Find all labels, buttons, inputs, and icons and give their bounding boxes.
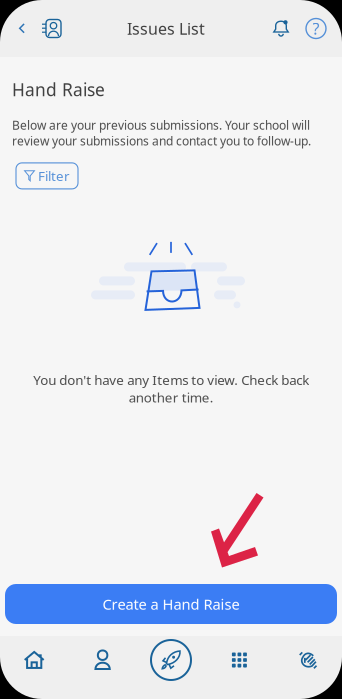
button[interactable]: Filter bbox=[16, 163, 78, 189]
button[interactable]: Apps bbox=[205, 637, 274, 683]
button[interactable]: Back bbox=[8, 6, 36, 50]
button[interactable]: Launch bbox=[137, 637, 205, 683]
staticText: Hand Raise bbox=[12, 78, 105, 101]
button[interactable]: Create a Hand Raise bbox=[5, 584, 337, 624]
staticText: Below are your previous submissions. You… bbox=[12, 117, 311, 149]
button[interactable]: Notifications bbox=[264, 6, 298, 50]
staticText: You don't have any Items to view. Check … bbox=[33, 371, 309, 406]
staticText: ? bbox=[312, 18, 319, 39]
button[interactable]: Home bbox=[0, 637, 68, 683]
staticText: Issues List bbox=[127, 18, 205, 39]
button[interactable]: Contacts bbox=[36, 6, 68, 50]
button[interactable]: Wave bbox=[274, 637, 342, 683]
staticText: Filter bbox=[38, 167, 70, 185]
staticText: Create a Hand Raise bbox=[102, 594, 239, 614]
button[interactable]: Profile bbox=[68, 637, 137, 683]
button[interactable]: Help bbox=[298, 6, 334, 50]
